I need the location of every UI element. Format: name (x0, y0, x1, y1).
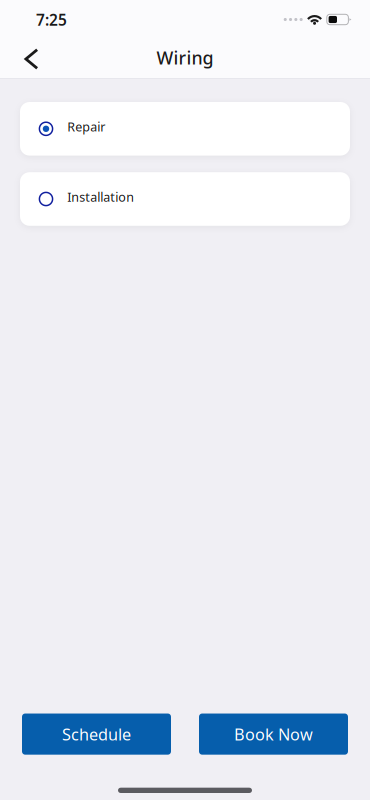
button[interactable]: Back (0, 38, 54, 80)
button[interactable]: Repair (20, 102, 350, 156)
staticText: Book Now (234, 723, 313, 745)
staticText: 7:25 (36, 9, 67, 30)
button[interactable]: Schedule (22, 713, 171, 755)
staticText: Wiring (156, 45, 213, 70)
button[interactable]: Installation (20, 172, 350, 226)
staticText: Repair (67, 118, 105, 135)
staticText: Installation (67, 188, 134, 205)
button[interactable]: Book Now (199, 713, 348, 755)
staticText: Schedule (62, 723, 131, 745)
